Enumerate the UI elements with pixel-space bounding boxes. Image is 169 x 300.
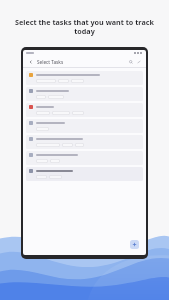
button[interactable] (36, 127, 49, 131)
button[interactable] (26, 167, 143, 181)
button[interactable] (49, 175, 62, 179)
button[interactable] (36, 95, 46, 99)
button[interactable] (26, 119, 143, 133)
button[interactable] (36, 159, 48, 163)
button[interactable] (50, 159, 60, 163)
button[interactable] (71, 79, 84, 83)
button[interactable] (36, 79, 56, 83)
button[interactable] (36, 175, 47, 179)
button[interactable]: Search (127, 58, 134, 65)
button[interactable]: More options (135, 58, 142, 65)
button[interactable]: Back (27, 58, 34, 65)
button[interactable] (58, 79, 69, 83)
button[interactable] (26, 103, 143, 117)
staticText: Select the tasks that you want to track … (8, 17, 161, 36)
button[interactable] (48, 95, 64, 99)
button[interactable] (72, 111, 84, 115)
button[interactable] (26, 151, 143, 165)
button[interactable] (62, 143, 73, 147)
button[interactable] (52, 111, 70, 115)
button[interactable] (36, 111, 50, 115)
button[interactable] (26, 135, 143, 149)
button[interactable] (26, 71, 143, 85)
staticText: Select Tasks (37, 59, 64, 65)
button[interactable]: Add task (130, 240, 139, 249)
button[interactable] (75, 143, 84, 147)
button[interactable] (26, 87, 143, 101)
button[interactable] (36, 143, 60, 147)
